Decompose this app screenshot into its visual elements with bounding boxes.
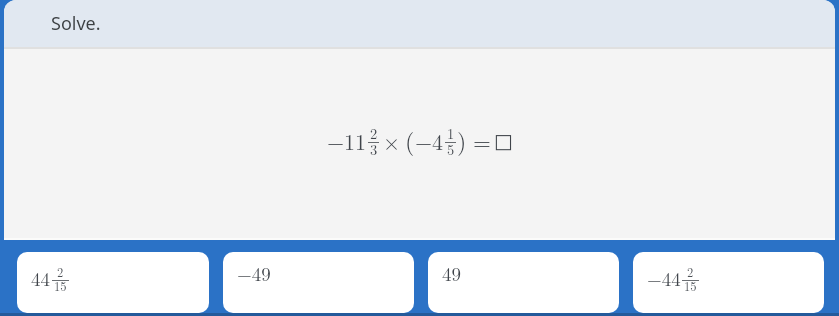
button[interactable]: 44 <box>17 252 209 313</box>
staticText: 5 <box>447 139 455 160</box>
staticText: −49 <box>237 260 271 287</box>
staticText: −44 <box>647 265 681 292</box>
button[interactable]: 49 <box>428 252 619 313</box>
button[interactable]: −49 <box>223 252 414 313</box>
staticText: 15 <box>54 277 67 295</box>
staticText: 2 <box>57 263 64 281</box>
staticText: 3 <box>370 139 378 160</box>
staticText: ( <box>405 123 415 157</box>
staticText: 2 <box>687 263 694 281</box>
staticText: × <box>383 125 401 156</box>
staticText: = <box>473 124 491 157</box>
staticText: −4 <box>415 125 444 156</box>
button[interactable]: −44 <box>633 252 824 313</box>
staticText: ) <box>457 123 467 157</box>
staticText: 1 <box>447 123 455 144</box>
staticText: −11 <box>327 125 367 156</box>
staticText: 44 <box>31 265 51 292</box>
staticText: 49 <box>442 260 462 287</box>
staticText: 15 <box>684 277 697 295</box>
staticText: Solve. <box>51 11 101 36</box>
staticText: 2 <box>370 123 378 144</box>
staticText: □ <box>494 129 513 152</box>
